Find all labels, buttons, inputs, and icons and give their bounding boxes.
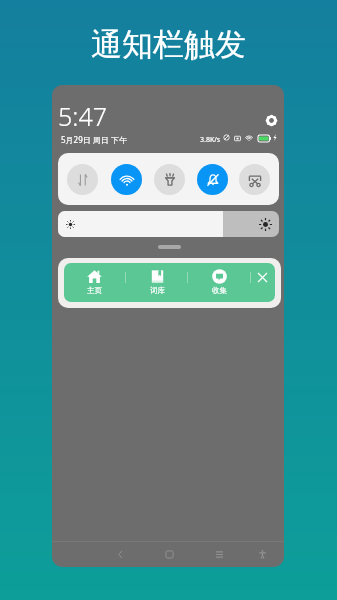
staticText: 3.8K/s [200,135,221,145]
button[interactable]: Flashlight [154,164,185,195]
button[interactable]: Screenshot [239,164,270,195]
staticText: 收集 [212,286,227,295]
button[interactable]: Back [106,540,134,567]
staticText: 5月29日 周日 下午 [61,134,127,145]
button[interactable]: Accessibility [248,540,276,567]
button[interactable]: Mobile data [67,164,98,195]
button[interactable]: Close [250,265,274,289]
button[interactable]: 词库 [129,263,185,302]
button[interactable]: Home [155,540,183,567]
button[interactable]: 收集 [191,263,247,302]
button[interactable]: Settings [265,114,278,127]
staticText: 5:47 [58,99,107,133]
button[interactable]: Silent mode [197,164,228,195]
staticText: 词库 [150,286,165,295]
button[interactable]: Brightness [58,211,279,237]
button[interactable]: Recents [205,540,233,567]
staticText: 主页 [87,286,102,295]
staticText: 通知栏触发 [0,25,337,64]
button[interactable]: 主页 [66,263,122,302]
button[interactable]: Wi-Fi [111,164,142,195]
